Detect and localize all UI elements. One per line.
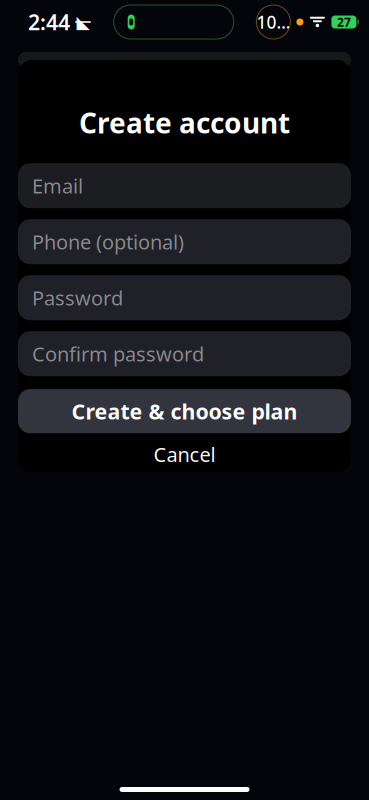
button[interactable]: Cancel <box>18 436 351 472</box>
staticText: Email <box>32 172 83 199</box>
staticText: Phone (optional) <box>32 228 184 255</box>
staticText: Confirm password <box>32 340 204 367</box>
staticText: 10… <box>256 10 290 33</box>
staticText: ◣ <box>76 12 89 32</box>
button[interactable]: Create & choose plan <box>18 389 351 433</box>
staticText: Create & choose plan <box>71 397 297 425</box>
staticText: Cancel <box>153 441 215 467</box>
staticText: Password <box>32 284 123 311</box>
staticText: 2:44 <box>28 8 70 36</box>
staticText: 27 <box>337 14 351 30</box>
staticText: Create account <box>79 104 290 141</box>
